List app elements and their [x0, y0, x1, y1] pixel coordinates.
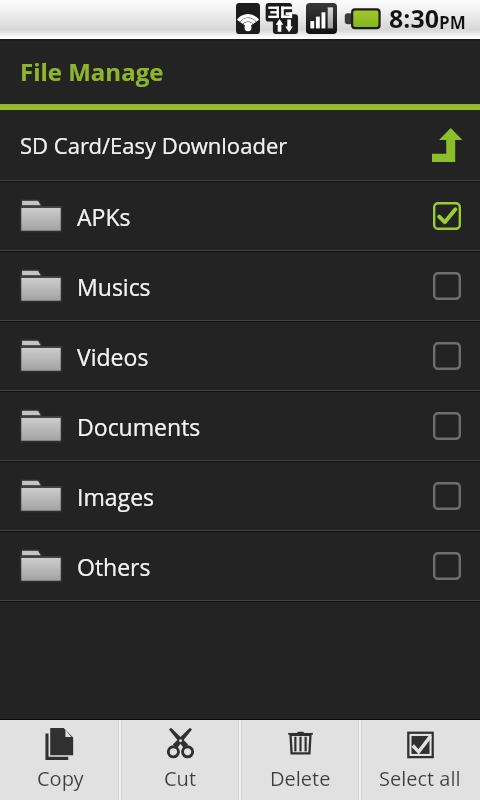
staticText: Images — [77, 481, 155, 512]
staticText: SD Card/Easy Downloader — [20, 130, 288, 160]
button[interactable]: Others — [0, 532, 480, 600]
staticText: Copy — [37, 765, 84, 792]
button[interactable]: Cut — [120, 720, 240, 800]
staticText: File Manage — [20, 55, 164, 88]
button[interactable]: Not selected — [433, 272, 461, 300]
staticText: Musics — [77, 271, 151, 302]
staticText: Select all — [379, 765, 461, 792]
button[interactable]: Not selected — [433, 482, 461, 510]
button[interactable]: Not selected — [433, 552, 461, 580]
staticText: PM — [439, 11, 466, 34]
staticText: Videos — [77, 341, 149, 372]
staticText: Documents — [77, 411, 201, 442]
staticText: Cut — [164, 765, 196, 792]
button[interactable]: Selected — [433, 202, 461, 230]
staticText: APKs — [77, 201, 131, 232]
button[interactable]: Delete — [240, 720, 360, 800]
staticText: Delete — [270, 765, 331, 792]
button[interactable]: Select all — [360, 720, 480, 800]
button[interactable]: Documents — [0, 392, 480, 460]
button[interactable]: Videos — [0, 322, 480, 390]
staticText: Others — [77, 551, 151, 582]
button[interactable]: Up one level — [424, 121, 472, 169]
button[interactable]: SD Card/Easy Downloader — [0, 110, 480, 180]
button[interactable]: Copy — [0, 720, 120, 800]
button[interactable]: APKs — [0, 182, 480, 250]
button[interactable]: Images — [0, 462, 480, 530]
staticText: 8:30 — [389, 1, 439, 35]
button[interactable]: Not selected — [433, 412, 461, 440]
button[interactable]: Not selected — [433, 342, 461, 370]
button[interactable]: Musics — [0, 252, 480, 320]
